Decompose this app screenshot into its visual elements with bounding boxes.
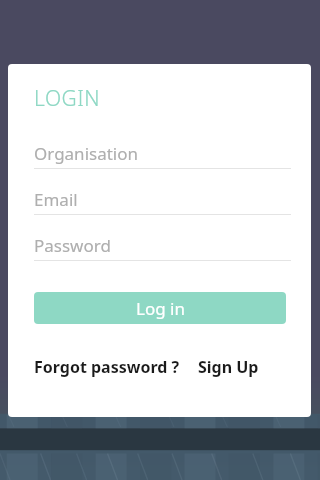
staticText: Email xyxy=(34,188,78,211)
staticText: Log in xyxy=(136,297,185,320)
button[interactable]: Forgot password ? xyxy=(34,356,180,378)
button[interactable]: Organisation xyxy=(34,138,291,169)
button[interactable]: Sign Up xyxy=(198,356,259,378)
staticText: Forgot password ? xyxy=(34,356,180,378)
button[interactable]: Log in xyxy=(34,292,286,324)
staticText: Organisation xyxy=(34,142,139,165)
staticText: Password xyxy=(34,234,111,257)
staticText: Sign Up xyxy=(198,356,259,378)
staticText: LOGIN xyxy=(34,84,101,113)
button[interactable]: Password xyxy=(34,230,291,261)
button[interactable]: Email xyxy=(34,184,291,215)
